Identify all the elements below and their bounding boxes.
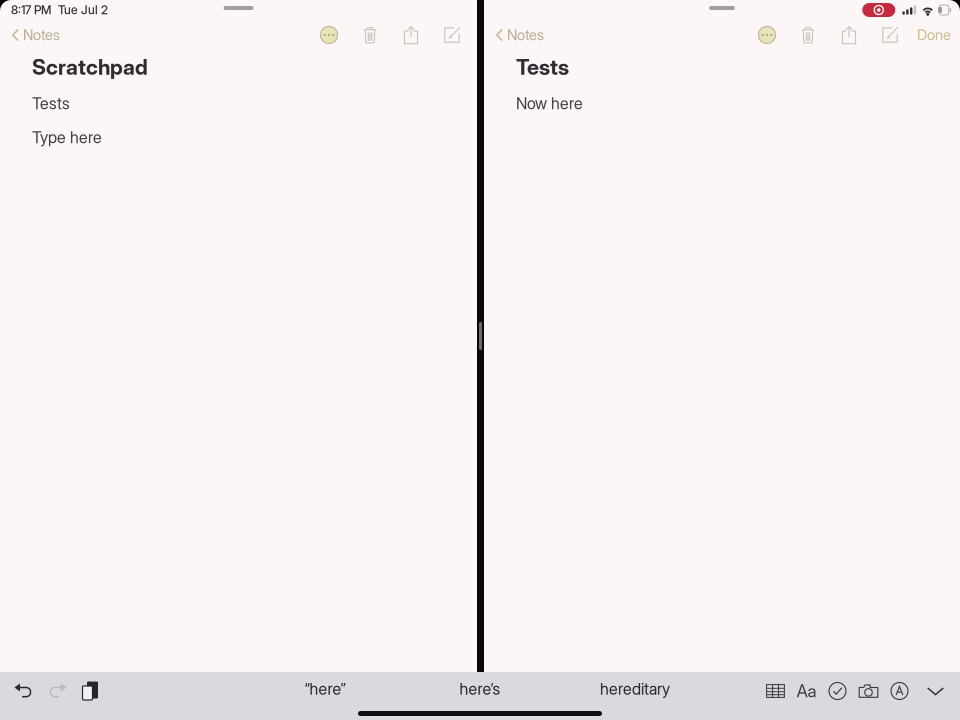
staticText: Done [917,26,951,44]
staticText: Notes [507,26,544,44]
staticText: Tests [32,94,70,113]
button[interactable]: Compose [875,20,905,50]
button[interactable]: Share [396,20,426,50]
staticText: Type here [32,128,102,147]
staticText: hereditary [600,679,670,699]
staticText: Aa [796,680,816,701]
staticText: Now here [516,94,583,113]
button[interactable]: Notes [8,20,64,50]
button[interactable]: Notes [492,20,548,50]
button[interactable]: Aa [791,673,822,709]
button[interactable]: Table [760,673,791,709]
button[interactable]: Delete [355,20,385,50]
button[interactable]: Camera [853,673,884,709]
button[interactable]: Redo [41,673,73,709]
staticText: Tests [516,54,569,80]
button[interactable]: Share [834,20,864,50]
button[interactable]: Done [914,20,954,50]
button[interactable]: hereditary [557,672,712,706]
button[interactable]: Markup [884,673,915,709]
button[interactable]: More [314,20,344,50]
staticText: “here” [304,679,345,699]
button[interactable]: Paste [74,673,106,709]
staticText: Notes [23,26,60,44]
button[interactable]: Compose [437,20,467,50]
button[interactable]: here’s [402,672,557,706]
staticText: Scratchpad [32,54,148,80]
staticText: Tue Jul 2 [58,3,108,17]
button[interactable]: Hide Keyboard [920,673,951,709]
button[interactable]: Delete [793,20,823,50]
staticText: 8:17 PM [11,3,51,17]
button[interactable]: Checklist [822,673,853,709]
button[interactable]: Undo [8,673,40,709]
button[interactable]: “here” [247,672,402,706]
staticText: here’s [459,679,500,699]
button[interactable]: More [752,20,782,50]
